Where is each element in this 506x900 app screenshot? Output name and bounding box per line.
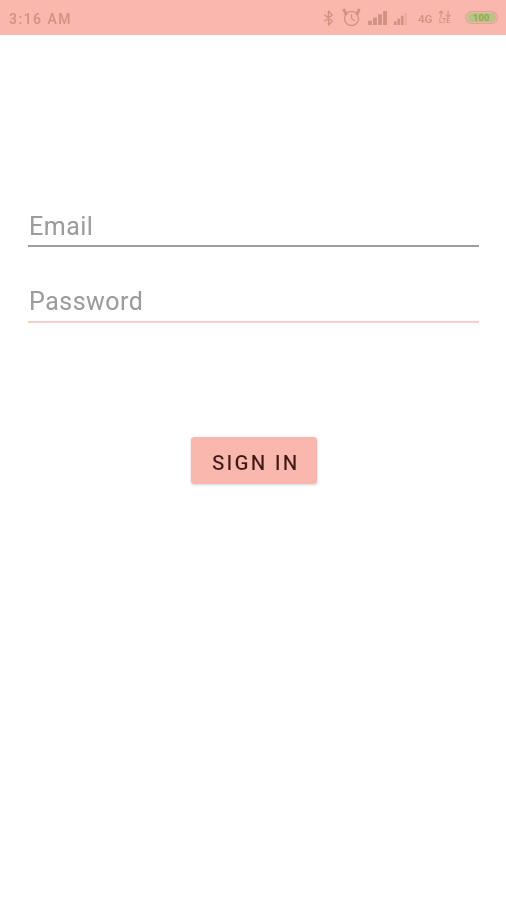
staticText: Password — [29, 287, 144, 316]
staticText: LTE — [439, 17, 451, 25]
staticText: SIGN IN — [212, 451, 300, 475]
staticText: 100 — [473, 12, 490, 23]
staticText: 4G — [418, 12, 433, 25]
button[interactable]: Email — [28, 212, 479, 247]
button[interactable]: Password — [28, 287, 479, 323]
staticText: Email — [29, 212, 94, 241]
staticText: 3:16 AM — [9, 11, 73, 27]
button[interactable]: SIGN IN — [191, 437, 317, 484]
